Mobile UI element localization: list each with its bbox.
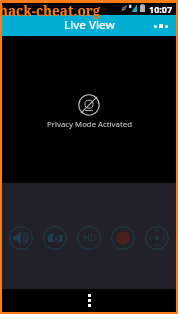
staticText: HD (83, 231, 97, 243)
staticText: Privacy Mode Activated (47, 119, 132, 130)
staticText: 10:07 (149, 3, 173, 13)
button[interactable]: Record (111, 226, 135, 250)
button[interactable]: More options (152, 17, 170, 35)
button[interactable]: Pan and tilt (145, 226, 169, 250)
button[interactable]: Menu (88, 294, 91, 307)
staticText: Live View (64, 17, 115, 33)
button[interactable]: HD quality (77, 226, 101, 250)
button[interactable]: Snapshot (43, 226, 67, 250)
staticText: hack-cheat.org (0, 2, 101, 20)
button[interactable]: Volume (9, 226, 33, 250)
